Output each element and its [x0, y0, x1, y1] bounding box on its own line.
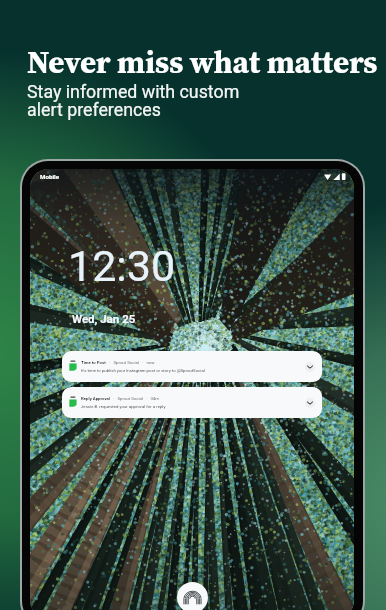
button[interactable]: Unlock with fingerprint [177, 582, 208, 610]
staticText: · Sprout Social · now [106, 360, 155, 365]
staticText: · Sprout Social · 34m [110, 396, 159, 401]
button[interactable]: Expand notification [305, 362, 315, 372]
staticText: Mobile [40, 173, 60, 180]
button[interactable]: Time to Post [62, 351, 322, 382]
button[interactable]: Reply Approval [62, 387, 322, 418]
staticText: Time to Post [81, 360, 106, 365]
staticText: 12:30 [68, 241, 176, 291]
staticText: Wed, Jan 25 [72, 312, 136, 325]
staticText: It's time to publish your Instagram post… [81, 368, 205, 373]
button[interactable]: Expand notification [305, 398, 315, 408]
staticText: Jessie B. requested your approval for a … [81, 404, 166, 409]
staticText: Stay informed with custom alert preferen… [27, 81, 240, 120]
staticText: Never miss what matters [27, 41, 378, 84]
staticText: Reply Approval [81, 396, 110, 401]
